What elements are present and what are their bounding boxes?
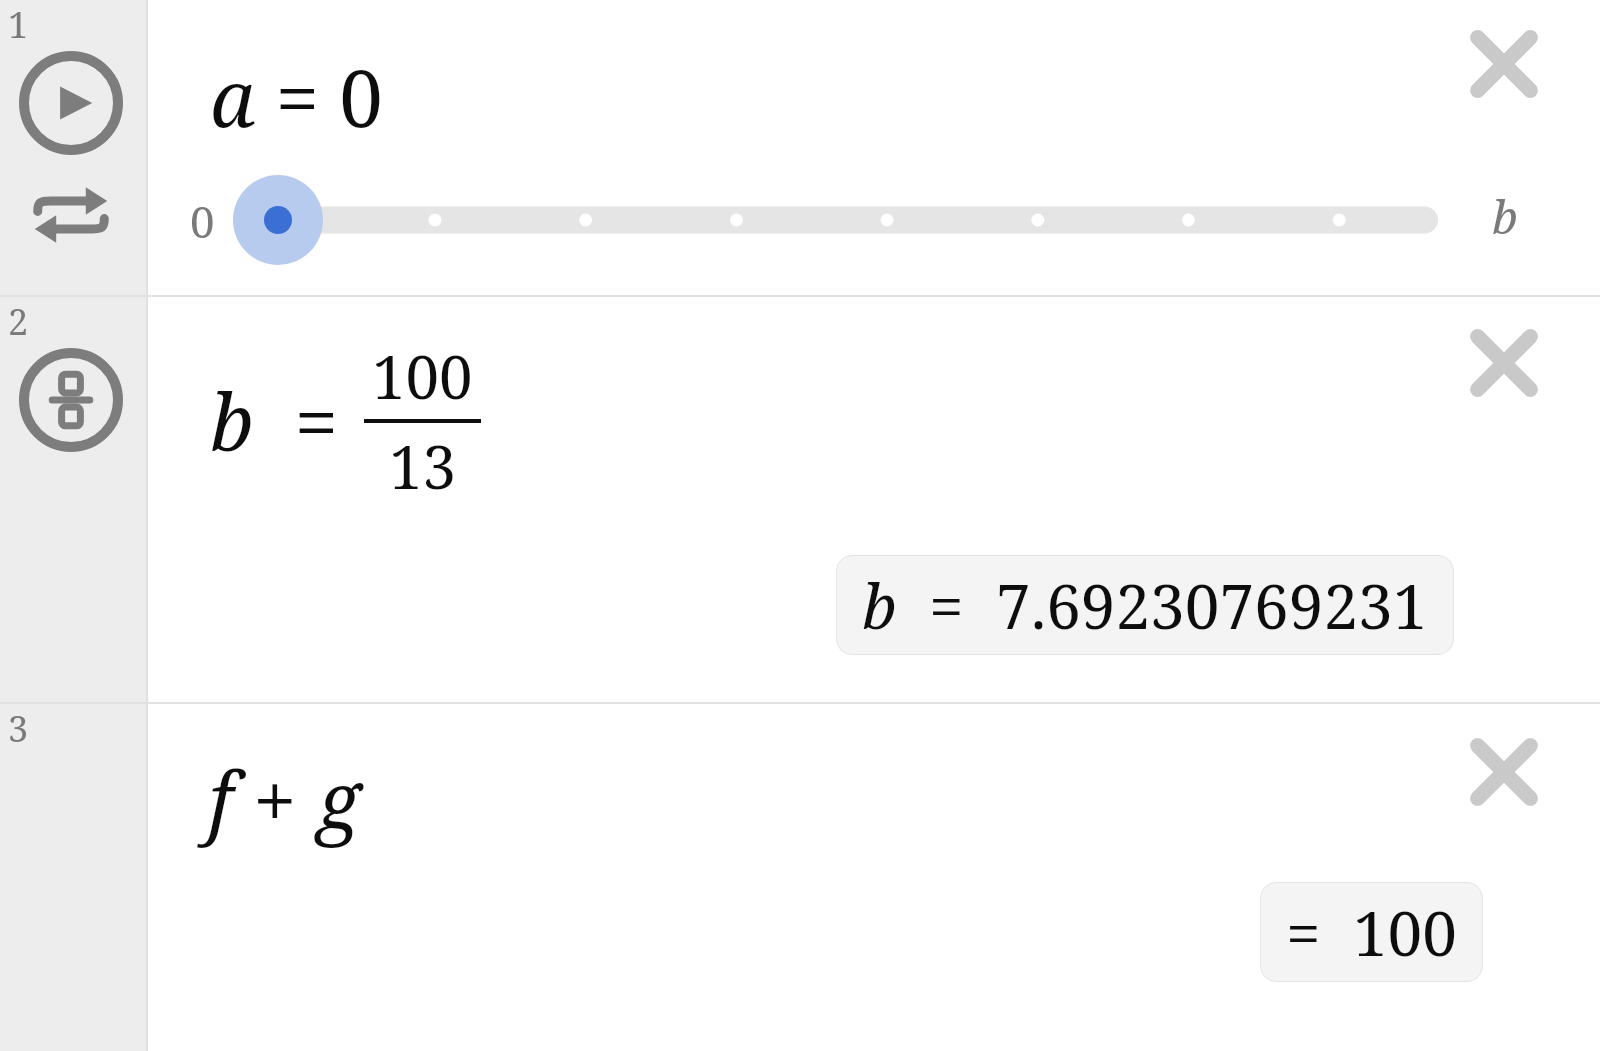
button[interactable]: Delete row (1456, 315, 1552, 411)
staticText: 1 (8, 0, 29, 49)
staticText: b (1492, 185, 1518, 248)
staticText: = 100 (1286, 890, 1457, 974)
button[interactable]: Fraction template (16, 345, 126, 455)
staticText: 100 (372, 335, 473, 417)
button[interactable]: Swap values (28, 178, 114, 252)
button[interactable]: Delete row (1456, 16, 1552, 112)
staticText: b = 7.69230769231 (862, 563, 1428, 647)
staticText: a = 0 (210, 44, 383, 150)
button[interactable]: b = 7.69230769231 (836, 555, 1454, 655)
staticText: 13 (389, 425, 457, 507)
staticText: f + g (208, 746, 361, 852)
button[interactable]: Slider for a (148, 165, 1600, 275)
button[interactable]: Play animation (16, 48, 126, 158)
staticText: 3 (8, 704, 29, 753)
staticText: 0 (190, 191, 215, 251)
staticText: b = (210, 368, 338, 474)
button[interactable]: = 100 (1260, 882, 1483, 982)
button[interactable]: Delete row (1456, 724, 1552, 820)
staticText: 2 (8, 297, 29, 346)
